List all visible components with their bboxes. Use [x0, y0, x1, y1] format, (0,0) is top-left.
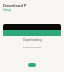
- button[interactable]: [28, 63, 36, 67]
- staticText: Some text here: [23, 45, 41, 48]
- staticText: Setup: [3, 8, 12, 12]
- staticText: Download P: [3, 3, 27, 8]
- staticText: Downloading: [23, 38, 42, 42]
